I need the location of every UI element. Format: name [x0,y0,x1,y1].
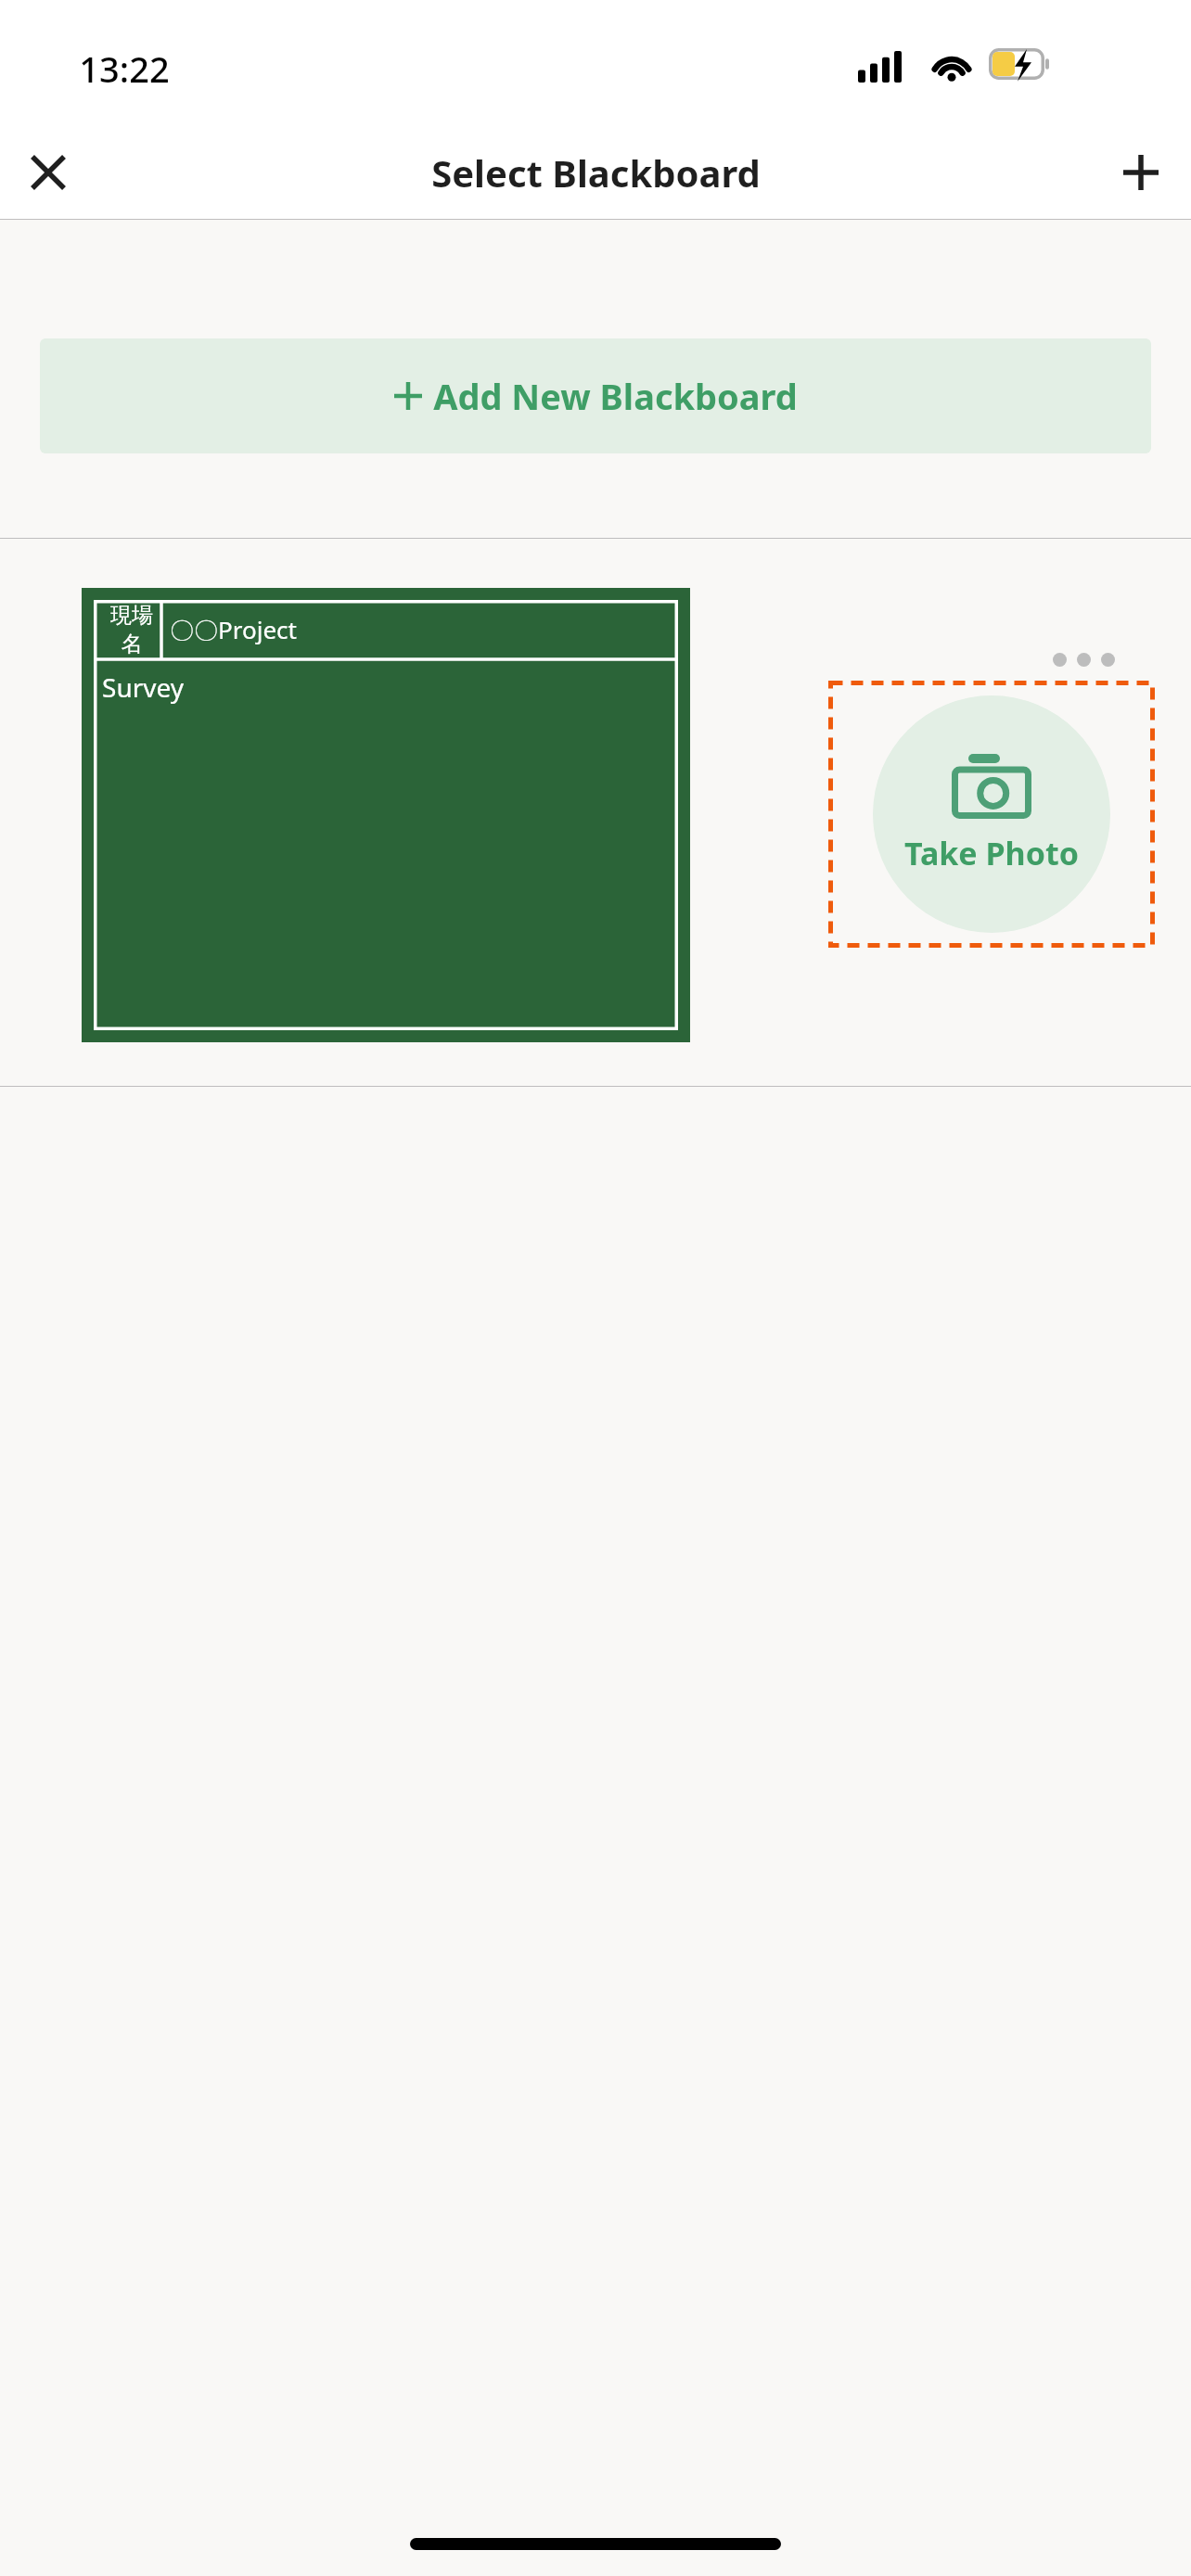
staticText: 13:22 [79,45,170,93]
staticText: 〇〇Project [170,613,297,646]
staticText: Add New Blackboard [433,372,798,420]
button[interactable]: 現場名 [82,588,690,1042]
staticText: Survey [102,670,184,705]
button[interactable]: Take Photo [828,681,1155,948]
button[interactable]: Add New Blackboard [40,338,1151,453]
staticText: Take Photo [904,832,1079,874]
staticText: 現場名 [102,602,161,657]
staticText: Select Blackboard [431,147,761,198]
button[interactable]: Add [1102,134,1180,211]
button[interactable]: Close [9,134,87,211]
button[interactable]: More options [1046,636,1121,682]
